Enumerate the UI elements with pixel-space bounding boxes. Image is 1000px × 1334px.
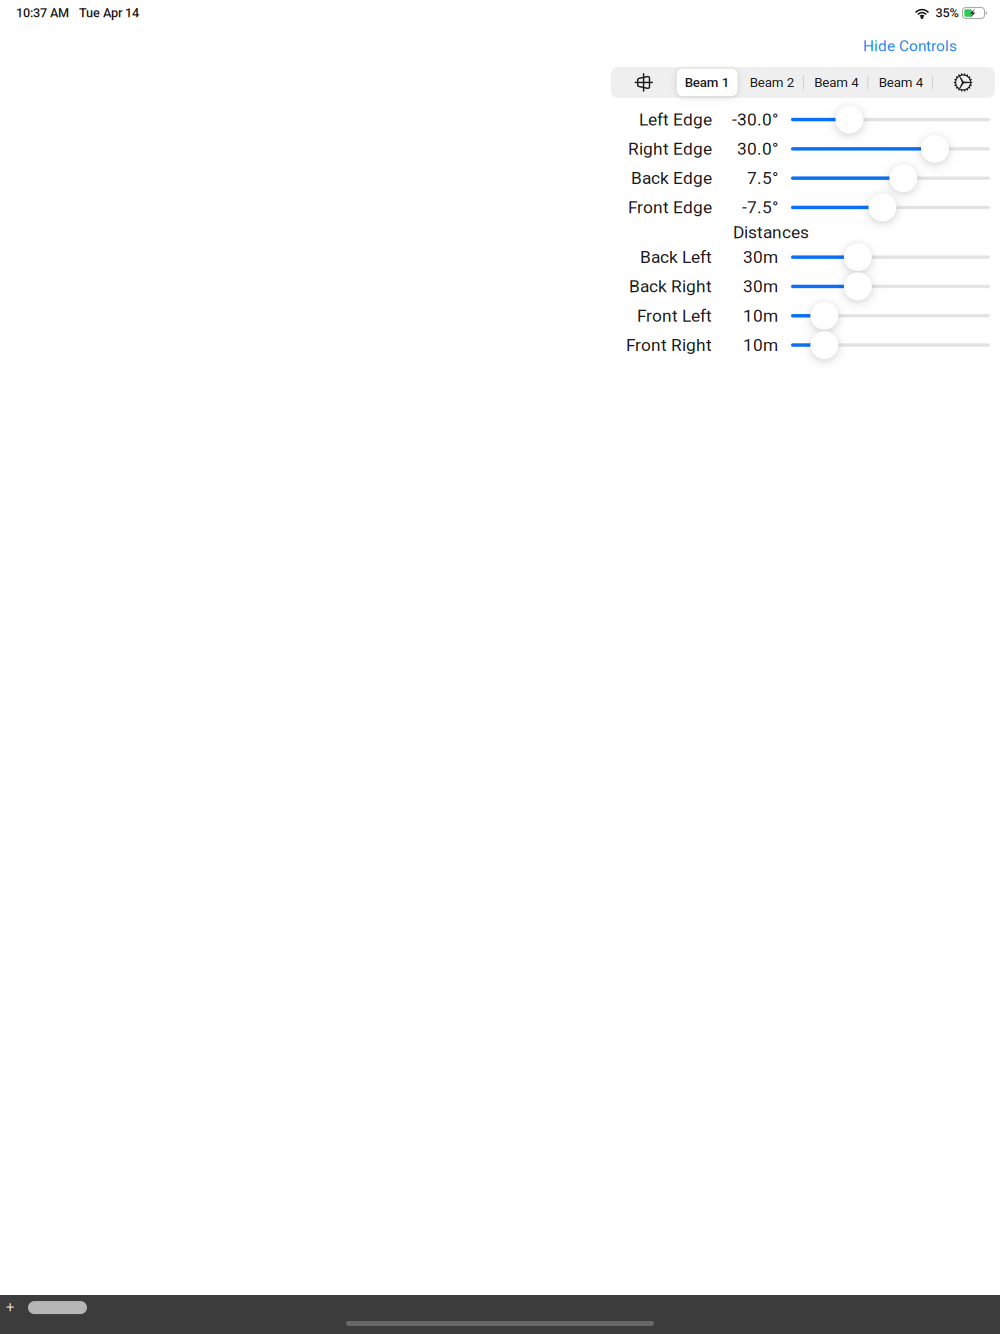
staticText: Tue Apr 14 bbox=[79, 6, 139, 20]
staticText: -7.5° bbox=[742, 197, 778, 218]
button[interactable]: Settings bbox=[933, 69, 993, 96]
button[interactable]: Beam 4 bbox=[868, 69, 933, 96]
staticText: 30m bbox=[743, 276, 778, 297]
staticText: Hide Controls bbox=[863, 37, 957, 55]
staticText: + bbox=[6, 1299, 14, 1316]
staticText: Left Edge bbox=[639, 109, 712, 130]
staticText: 30m bbox=[743, 247, 778, 267]
staticText: 10m bbox=[743, 306, 778, 326]
staticText: Beam 4 bbox=[879, 75, 923, 90]
staticText: -30.0° bbox=[732, 109, 778, 130]
staticText: Back Edge bbox=[631, 168, 712, 188]
staticText: 30.0° bbox=[737, 139, 778, 159]
staticText: Back Right bbox=[629, 276, 712, 297]
staticText: Beam 2 bbox=[750, 75, 794, 90]
staticText: Right Edge bbox=[628, 139, 712, 159]
staticText: Front Left bbox=[637, 306, 712, 326]
button[interactable]: Beam 2 bbox=[739, 69, 804, 96]
button[interactable]: Beam 1 bbox=[675, 69, 739, 96]
staticText: 7.5° bbox=[747, 168, 778, 188]
staticText: Front Right bbox=[626, 335, 712, 355]
staticText: 10m bbox=[743, 335, 778, 355]
staticText: Front Edge bbox=[628, 197, 712, 218]
button[interactable]: Hide Controls bbox=[859, 35, 961, 57]
staticText: Distances bbox=[733, 222, 809, 242]
staticText: 35% bbox=[935, 6, 958, 20]
staticText: Beam 4 bbox=[814, 75, 858, 90]
button[interactable]: Beam 4 bbox=[804, 69, 868, 96]
staticText: Back Left bbox=[640, 247, 712, 267]
button[interactable]: Grid bbox=[613, 69, 675, 96]
staticText: Beam 1 bbox=[685, 75, 730, 90]
staticText: 10:37 AM bbox=[16, 6, 69, 20]
